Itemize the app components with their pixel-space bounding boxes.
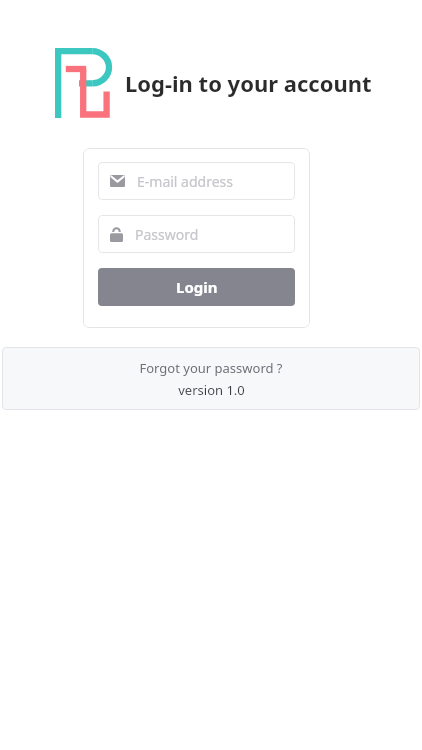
button[interactable]: Forgot your password ? — [139, 359, 283, 377]
staticText: Login — [176, 277, 218, 297]
staticText: version 1.0 — [178, 381, 245, 399]
button[interactable]: Password — [98, 215, 295, 253]
staticText: Forgot your password ? — [139, 359, 283, 377]
other: Password — [110, 227, 123, 242]
staticText: Log-in to your account — [125, 68, 372, 98]
button[interactable]: Login — [98, 268, 295, 306]
other: Email — [110, 175, 125, 187]
button[interactable]: Email — [98, 162, 295, 200]
other: Logo — [55, 48, 115, 118]
staticText: E-mail address — [137, 172, 233, 191]
staticText: Password — [135, 225, 199, 244]
